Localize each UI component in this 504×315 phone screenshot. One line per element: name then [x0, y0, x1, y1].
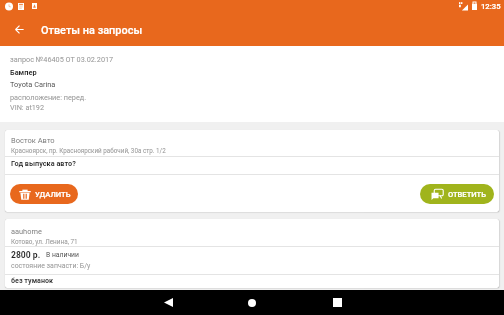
button[interactable]: ОТВЕТИТЬ	[420, 184, 494, 204]
staticText: Ответы на запросы	[41, 24, 143, 37]
button[interactable]: Recents	[323, 290, 351, 315]
staticText: Бампер	[10, 68, 37, 77]
button[interactable]: Back	[8, 18, 30, 40]
staticText: запрос №46405 ОТ 03.02.2017	[10, 55, 114, 64]
staticText: 12:35	[481, 2, 501, 11]
staticText: VIN: at192	[10, 103, 45, 112]
button[interactable]: Back	[154, 290, 182, 315]
button[interactable]: Home	[238, 290, 266, 315]
staticText: Год выпуска авто?	[11, 159, 76, 168]
staticText: 2800 р.	[11, 250, 41, 260]
staticText: Красноярск, пр. Красноярский рабочий, 30…	[11, 147, 166, 154]
staticText: УДАЛИТЬ	[35, 190, 71, 199]
staticText: расположение: перед.	[10, 93, 87, 102]
staticText: без туманок	[11, 276, 54, 284]
staticText: состояние запчасти: Б/у	[11, 262, 91, 270]
staticText: ОТВЕТИТЬ	[448, 190, 487, 199]
staticText: Toyota Carina	[10, 80, 56, 89]
staticText: Восток Авто	[11, 136, 55, 145]
button[interactable]: УДАЛИТЬ	[10, 184, 78, 204]
staticText: aauhome	[11, 227, 42, 236]
staticText: В наличии	[46, 251, 79, 259]
staticText: Котово, ул. Ленина, 71	[11, 238, 78, 246]
